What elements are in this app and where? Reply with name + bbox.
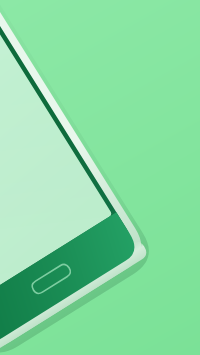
button[interactable]: Phone illustration — [0, 0, 200, 355]
